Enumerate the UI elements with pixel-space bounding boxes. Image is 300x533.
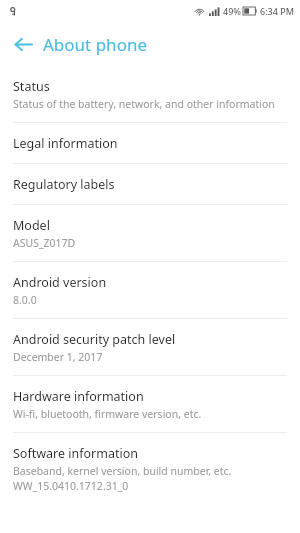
button[interactable]: Software information	[0, 433, 300, 504]
staticText: Hardware information	[13, 388, 144, 405]
staticText: Wi-fi, bluetooth, firmware version, etc.	[13, 407, 202, 421]
staticText: 8.0.0	[13, 293, 37, 307]
staticText: Android security patch level	[13, 331, 176, 348]
staticText: WW_15.0410.1712.31_0	[13, 479, 129, 493]
staticText: Status of the battery, network, and othe…	[13, 97, 275, 111]
staticText: About phone	[43, 33, 148, 56]
button[interactable]: Android security patch level	[0, 319, 300, 375]
staticText: Regulatory labels	[13, 176, 115, 193]
staticText: Android version	[13, 274, 107, 291]
staticText: Baseband, kernel version, build number, …	[13, 464, 232, 478]
staticText: Software information	[13, 445, 138, 462]
button[interactable]: Regulatory labels	[0, 164, 300, 204]
button[interactable]: Hardware information	[0, 376, 300, 432]
staticText: Model	[13, 217, 50, 234]
staticText: December 1, 2017	[13, 350, 103, 364]
staticText: 49%	[223, 5, 241, 17]
staticText: 6:34 PM	[260, 5, 294, 17]
staticText: Legal information	[13, 135, 118, 152]
button[interactable]: Legal information	[0, 123, 300, 163]
button[interactable]: Model	[0, 205, 300, 261]
staticText: Status	[13, 78, 50, 95]
button[interactable]: Status	[0, 66, 300, 122]
button[interactable]: Back	[6, 27, 40, 61]
staticText: ASUS_Z017D	[13, 236, 76, 250]
button[interactable]: Android version	[0, 262, 300, 318]
